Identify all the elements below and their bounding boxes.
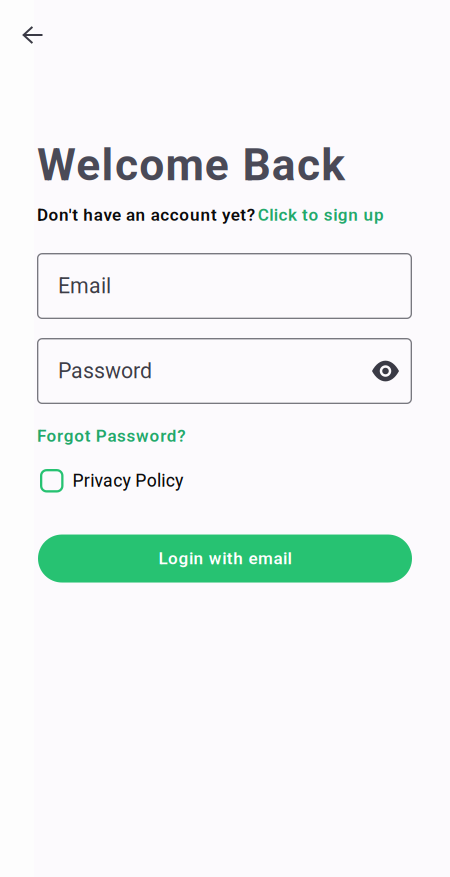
button[interactable]: Show password — [372, 361, 399, 381]
button[interactable]: Forgot Password? — [37, 426, 185, 446]
staticText: Privacy Policy — [72, 470, 183, 491]
button[interactable]: Privacy Policy — [40, 469, 183, 492]
staticText: Welcome Back — [37, 139, 345, 191]
button[interactable]: Click to sign up — [258, 205, 384, 225]
button[interactable]: Login with email — [38, 534, 412, 582]
button[interactable]: Back — [11, 13, 55, 57]
staticText: Email — [58, 273, 111, 298]
staticText: Password — [58, 358, 152, 383]
staticText: Forgot Password? — [37, 426, 185, 446]
staticText: Click to sign up — [258, 205, 384, 225]
staticText: Don't have an account yet? — [37, 205, 255, 225]
staticText: Login with email — [158, 548, 292, 568]
button[interactable]: Email — [37, 253, 412, 319]
